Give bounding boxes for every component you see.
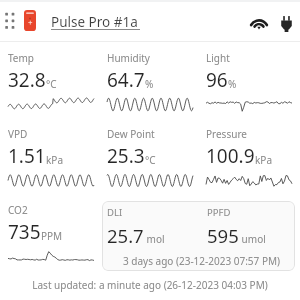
button[interactable]: Light bbox=[206, 51, 293, 112]
staticText: 64.7 bbox=[107, 67, 145, 93]
button[interactable]: Temp bbox=[8, 51, 95, 112]
staticText: PPM bbox=[41, 229, 63, 243]
staticText: Pressure bbox=[206, 127, 247, 141]
staticText: kPa bbox=[46, 153, 63, 167]
button[interactable]: Humidity bbox=[107, 51, 194, 112]
staticText: 100.9 bbox=[206, 143, 255, 169]
staticText: 3 days ago (23-12-2023 07:57 PM) bbox=[105, 254, 295, 268]
staticText: umol bbox=[239, 232, 266, 246]
staticText: kPa bbox=[255, 153, 272, 167]
staticText: 96 bbox=[206, 67, 228, 93]
staticText: 735 bbox=[8, 219, 41, 245]
staticText: DLI bbox=[107, 206, 123, 219]
button[interactable]: DLI bbox=[102, 201, 295, 271]
button[interactable]: Pressure bbox=[206, 127, 293, 188]
staticText: VPD bbox=[8, 127, 28, 141]
staticText: Temp bbox=[8, 51, 34, 65]
button[interactable]: CO2 bbox=[8, 203, 95, 264]
button[interactable]: WiFi bbox=[249, 15, 269, 29]
button[interactable]: Power bbox=[281, 16, 292, 32]
staticText: °C bbox=[46, 77, 57, 91]
staticText: Last updated: a minute ago (26-12-2023 0… bbox=[0, 278, 300, 292]
button[interactable]: Dew Point bbox=[107, 127, 194, 188]
staticText: PPFD bbox=[207, 206, 231, 219]
staticText: 25.7 bbox=[107, 223, 144, 248]
staticText: CO2 bbox=[8, 203, 28, 217]
staticText: 32.8 bbox=[8, 67, 46, 93]
staticText: 595 bbox=[207, 223, 239, 248]
button[interactable]: Pulse Pro #1a bbox=[51, 13, 140, 31]
staticText: °C bbox=[145, 153, 156, 167]
staticText: Dew Point bbox=[107, 127, 155, 141]
staticText: Humidity bbox=[107, 51, 150, 65]
staticText: % bbox=[228, 77, 237, 91]
staticText: 1.51 bbox=[8, 143, 46, 169]
staticText: Light bbox=[206, 51, 230, 65]
staticText: % bbox=[145, 77, 154, 91]
button[interactable]: VPD bbox=[8, 127, 95, 188]
staticText: mol bbox=[144, 232, 165, 246]
staticText: 25.3 bbox=[107, 143, 145, 169]
button[interactable]: Reorder bbox=[3, 10, 16, 31]
staticText: Pulse Pro #1a bbox=[51, 13, 138, 31]
